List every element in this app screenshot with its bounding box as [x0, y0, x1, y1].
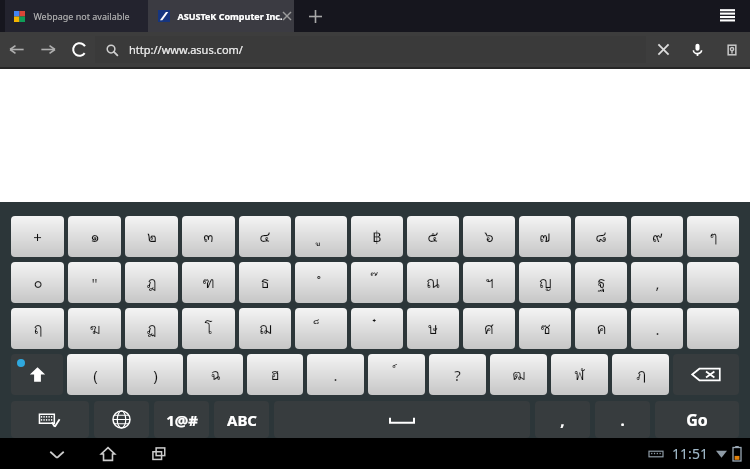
button[interactable]: ฬ [551, 354, 608, 395]
staticText: โ [204, 317, 213, 341]
button[interactable]: . [307, 354, 364, 395]
button[interactable]: ) [127, 354, 183, 395]
button[interactable]: ๊ [351, 262, 403, 303]
staticText: 11:51 [672, 444, 708, 463]
staticText: . [655, 319, 660, 339]
button[interactable]: ญ [519, 262, 571, 303]
button[interactable]: ASUSTeK Computer Inc. [148, 0, 294, 32]
button[interactable]: ฮ [247, 354, 303, 395]
button[interactable]: Back [0, 32, 33, 67]
button[interactable]: ธ [239, 262, 291, 303]
button[interactable]: ํ [295, 262, 347, 303]
button[interactable]: ษ [407, 308, 459, 349]
staticText: ณ [426, 271, 440, 295]
staticText: ๔ [259, 225, 271, 249]
button[interactable]: Reload [64, 32, 95, 67]
button[interactable]: ณ [407, 262, 459, 303]
button[interactable]: ฎ [125, 262, 178, 303]
button[interactable]: . [595, 401, 650, 438]
staticText: ฮ [270, 363, 280, 387]
button[interactable]: ็ [295, 308, 347, 349]
button[interactable]: ศ [463, 308, 515, 349]
button[interactable]: โ [182, 308, 235, 349]
button[interactable]: ๗ [519, 216, 571, 257]
button[interactable]: Webpage not available [5, 0, 148, 32]
staticText: ? [454, 365, 461, 385]
button[interactable]: New tab [297, 0, 333, 32]
staticText: ๖ [484, 225, 494, 249]
button[interactable] [687, 308, 739, 349]
button[interactable]: Space [274, 401, 530, 438]
button[interactable]: ABC [214, 401, 269, 438]
button[interactable]: Bookmarks [714, 32, 750, 67]
button[interactable] [687, 262, 739, 303]
button[interactable]: Close tab [283, 7, 291, 25]
button[interactable]: Stop loading [646, 32, 680, 67]
staticText: ฌ [259, 317, 272, 341]
button[interactable]: ค [575, 308, 627, 349]
button[interactable]: " [68, 262, 121, 303]
button[interactable]: Home [89, 438, 127, 469]
staticText: ๗ [539, 225, 551, 249]
button[interactable]: ๔ [239, 216, 291, 257]
staticText: ฬ [574, 363, 585, 387]
staticText: ฦ [636, 363, 646, 387]
button[interactable]: + [11, 216, 64, 257]
staticText: ฏ [146, 317, 157, 341]
button[interactable]: Back [38, 438, 76, 469]
button[interactable]: ๖ [463, 216, 515, 257]
button[interactable]: ๙ [631, 216, 683, 257]
button[interactable]: Keyboard settings [11, 401, 89, 438]
button[interactable]: ฑ [182, 262, 235, 303]
button[interactable]: Menu [713, 2, 741, 30]
staticText: ฑ [202, 271, 215, 295]
button[interactable]: ฦ [612, 354, 669, 395]
staticText: ฒ [512, 363, 526, 387]
button[interactable]: ู [295, 216, 347, 257]
staticText: ๆ [709, 225, 718, 249]
button[interactable]: ๋ [351, 308, 403, 349]
button[interactable]: Go [655, 401, 739, 438]
staticText: ฯ [485, 271, 494, 295]
button[interactable]: ฌ [239, 308, 291, 349]
staticText: ๑ [90, 225, 100, 249]
button[interactable]: ฏ [125, 308, 178, 349]
button[interactable]: ๘ [575, 216, 627, 257]
button[interactable]: ๓ [182, 216, 235, 257]
button[interactable]: http://www.asus.com/ [95, 36, 646, 63]
button[interactable]: Recent apps [140, 438, 178, 469]
button[interactable]: Backspace [673, 354, 739, 395]
button[interactable]: ฉ [187, 354, 243, 395]
button[interactable]: ฒ [490, 354, 547, 395]
button[interactable]: ๐ [11, 262, 64, 303]
button[interactable]: ? [429, 354, 486, 395]
staticText: ๘ [595, 225, 607, 249]
staticText: . [333, 365, 338, 385]
staticText: ๐ [33, 271, 43, 295]
button[interactable]: . [631, 308, 683, 349]
button[interactable]: ๑ [68, 216, 121, 257]
staticText: Go [686, 409, 708, 431]
button[interactable]: ฿ [351, 216, 403, 257]
staticText: ศ [484, 317, 494, 341]
button[interactable]: 1@# [154, 401, 209, 438]
button[interactable]: Forward [33, 32, 64, 67]
button[interactable]: , [631, 262, 683, 303]
button[interactable]: ฤ [11, 308, 64, 349]
button[interactable]: ๕ [407, 216, 459, 257]
button[interactable]: ฆ [68, 308, 121, 349]
button[interactable]: ซ [519, 308, 571, 349]
button[interactable]: ๒ [125, 216, 178, 257]
staticText: ๕ [427, 225, 439, 249]
button[interactable]: ๆ [687, 216, 739, 257]
button[interactable]: Shift [11, 354, 63, 395]
staticText: ค [596, 317, 607, 341]
button[interactable]: ( [67, 354, 123, 395]
button[interactable]: ์ [368, 354, 425, 395]
staticText: + [33, 227, 42, 247]
button[interactable]: ฯ [463, 262, 515, 303]
button[interactable]: Voice search [680, 32, 714, 67]
button[interactable]: , [535, 401, 590, 438]
button[interactable]: Change language [94, 401, 149, 438]
button[interactable]: ฐ [575, 262, 627, 303]
